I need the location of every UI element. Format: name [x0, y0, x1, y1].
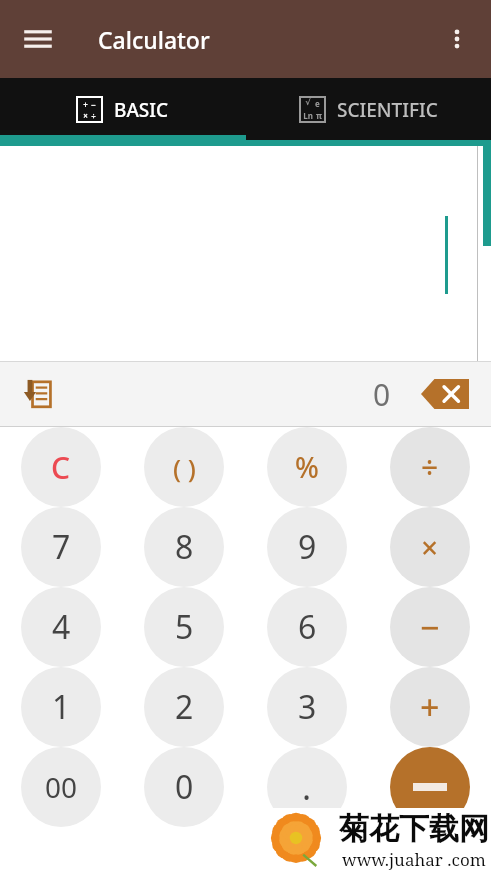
- button[interactable]: 4: [21, 587, 101, 667]
- staticText: 7: [52, 525, 71, 569]
- staticText: 6: [298, 605, 317, 649]
- staticText: √: [305, 98, 311, 107]
- button[interactable]: ( ): [144, 427, 224, 507]
- staticText: Ln: [303, 110, 313, 121]
- staticText: 00: [45, 768, 78, 806]
- button[interactable]: More options: [431, 13, 483, 65]
- button[interactable]: 8: [144, 507, 224, 587]
- button[interactable]: 00: [21, 747, 101, 827]
- button[interactable]: ×: [390, 507, 470, 587]
- staticText: BASIC: [114, 97, 169, 123]
- staticText: −: [420, 604, 440, 650]
- staticText: 9: [298, 525, 317, 569]
- staticText: 5: [175, 605, 194, 649]
- staticText: %: [295, 448, 319, 486]
- button[interactable]: Backspace: [417, 374, 473, 414]
- button[interactable]: Minus: [390, 747, 470, 827]
- staticText: e: [315, 98, 320, 109]
- button[interactable]: %: [267, 427, 347, 507]
- button[interactable]: −: [390, 587, 470, 667]
- button[interactable]: +: [390, 667, 470, 747]
- staticText: ÷: [421, 447, 439, 488]
- button[interactable]: ÷: [390, 427, 470, 507]
- staticText: ( ): [173, 450, 196, 485]
- staticText: 8: [175, 525, 194, 569]
- button[interactable]: 5: [144, 587, 224, 667]
- staticText: C: [51, 447, 71, 488]
- staticText: www.juahar .com: [342, 848, 486, 871]
- button[interactable]: 1: [21, 667, 101, 747]
- button[interactable]: 7: [21, 507, 101, 587]
- button[interactable]: .: [267, 747, 347, 827]
- staticText: 4: [52, 605, 71, 649]
- button[interactable]: √: [245, 78, 491, 140]
- staticText: ÷: [91, 110, 96, 120]
- button[interactable]: 0: [144, 747, 224, 827]
- staticText: 1: [52, 685, 71, 729]
- staticText: SCIENTIFIC: [337, 97, 438, 123]
- button[interactable]: C: [21, 427, 101, 507]
- button[interactable]: 6: [267, 587, 347, 667]
- button[interactable]: Paste: [14, 371, 60, 417]
- staticText: 0: [373, 374, 391, 415]
- staticText: .: [302, 764, 312, 810]
- staticText: 菊花下载网: [339, 810, 489, 848]
- staticText: 2: [175, 685, 194, 729]
- staticText: 3: [298, 685, 317, 729]
- staticText: ×: [421, 527, 439, 568]
- staticText: Calculator: [98, 24, 210, 55]
- button[interactable]: 3: [267, 667, 347, 747]
- staticText: 0: [175, 765, 194, 809]
- button[interactable]: Menu: [10, 11, 66, 67]
- button[interactable]: 9: [267, 507, 347, 587]
- button[interactable]: 2: [144, 667, 224, 747]
- staticText: +: [420, 684, 440, 730]
- staticText: −: [91, 99, 96, 110]
- button[interactable]: +: [0, 78, 245, 140]
- staticText: ×: [83, 110, 88, 120]
- staticText: π: [316, 110, 322, 121]
- staticText: +: [83, 99, 88, 110]
